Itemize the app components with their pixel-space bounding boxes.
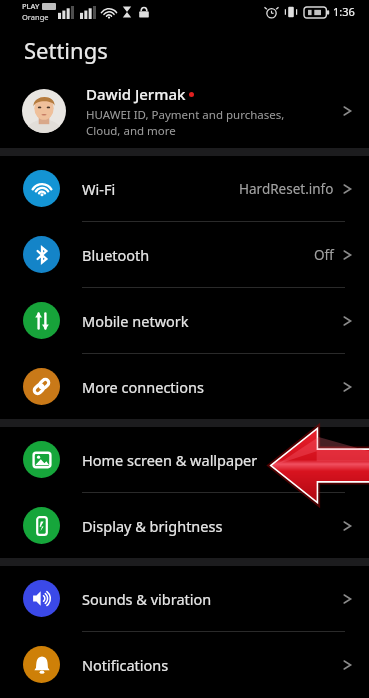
other: Display and brightness [32,516,52,536]
staticText: Dawid Jermak [86,84,186,104]
staticText: Display & brightness [82,516,342,536]
other: Notifications [32,655,52,675]
other: Bluetooth [32,245,52,265]
staticText: Home screen & wallpaper [82,450,342,470]
other: Home screen and wallpaper [32,450,52,470]
button[interactable]: Mobile network [0,288,369,354]
staticText: HUAWEI ID, Payment and purchases, Cloud,… [86,107,285,138]
other: Mobile network [32,311,52,331]
button[interactable]: Home screen and wallpaper [0,427,369,493]
staticText: Settings [24,35,108,65]
staticText: PLAY [22,1,40,11]
button[interactable]: Sounds and vibration [0,566,369,632]
staticText: Notifications [82,655,342,675]
other: Sounds and vibration [31,588,52,609]
button[interactable]: Bluetooth [0,222,369,288]
staticText: Mobile network [82,311,342,331]
staticText: Orange [22,12,49,22]
staticText: Off [314,246,334,264]
other: Wi-Fi [31,178,53,200]
staticText: Wi-Fi [82,179,239,199]
staticText: More connections [82,377,342,397]
button[interactable]: Dawid Jermak [0,73,369,148]
other: More connections [31,376,52,397]
button[interactable]: Wi-Fi [0,156,369,222]
button[interactable]: Notifications [0,632,369,697]
staticText: HardReset.info [239,180,334,198]
button[interactable]: More connections [0,354,369,419]
staticText: Sounds & vibration [82,589,342,609]
staticText: 1:36 [333,4,355,19]
staticText: Bluetooth [82,245,314,265]
button[interactable]: Display and brightness [0,493,369,558]
